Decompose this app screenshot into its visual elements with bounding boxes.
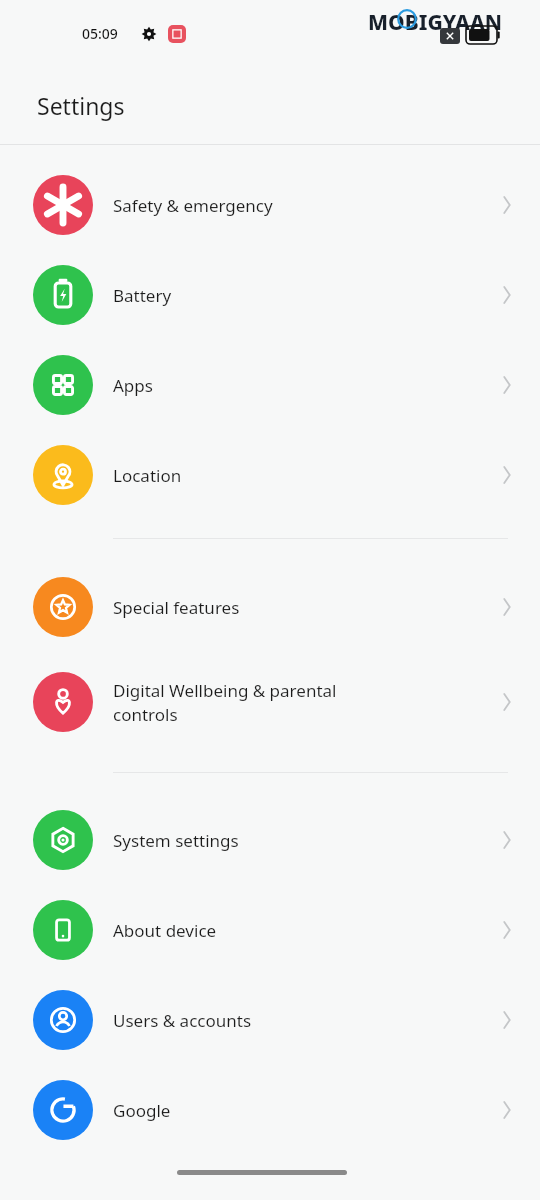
button[interactable]: Users & accounts xyxy=(0,975,540,1065)
staticText: MOBIGYAAN xyxy=(368,8,503,37)
staticText: 05:09 xyxy=(82,24,118,43)
staticText: Battery xyxy=(113,284,510,307)
staticText: System settings xyxy=(113,829,510,852)
staticText: About device xyxy=(113,919,510,942)
button[interactable]: Apps xyxy=(0,340,540,430)
staticText: Special features xyxy=(113,596,510,619)
button[interactable]: Google xyxy=(0,1065,540,1155)
button[interactable]: Digital Wellbeing & parental controls xyxy=(0,657,540,747)
button[interactable]: Special features xyxy=(0,562,540,652)
button[interactable]: About device xyxy=(0,885,540,975)
button[interactable]: Location xyxy=(0,430,540,520)
other: Settings indicator xyxy=(141,26,157,42)
staticText: Safety & emergency xyxy=(113,194,510,217)
button[interactable]: Safety & emergency xyxy=(0,160,540,250)
button[interactable]: Battery xyxy=(0,250,540,340)
staticText: Location xyxy=(113,464,510,487)
button[interactable]: System settings xyxy=(0,795,540,885)
staticText: Google xyxy=(113,1099,510,1122)
staticText: Apps xyxy=(113,374,510,397)
staticText: Users & accounts xyxy=(113,1009,510,1032)
staticText: Digital Wellbeing & parental controls xyxy=(113,679,510,726)
staticText: Settings xyxy=(37,90,125,121)
